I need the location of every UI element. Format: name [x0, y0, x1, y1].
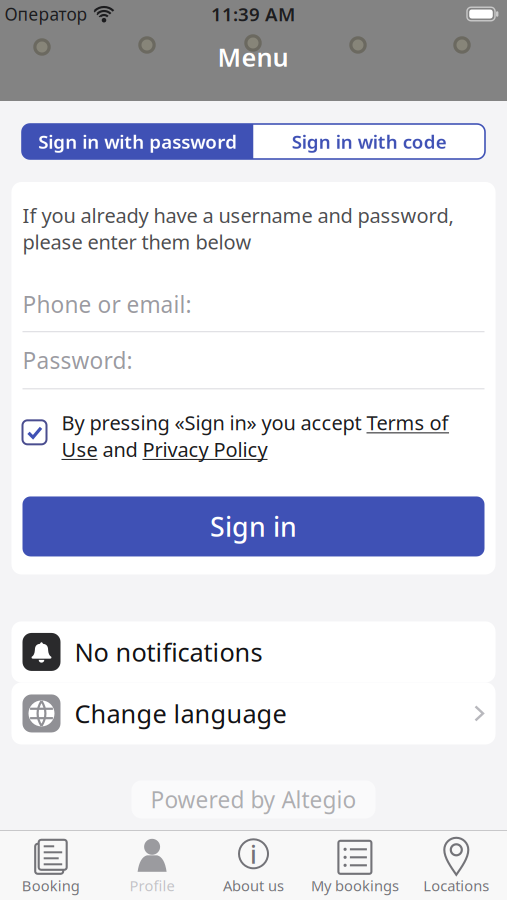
staticText: Booking — [22, 876, 80, 895]
staticText: Change language — [74, 697, 286, 730]
staticText: No notifications — [74, 635, 262, 669]
button[interactable]: Profile — [101, 837, 203, 895]
staticText: Sign in with code — [292, 129, 447, 154]
staticText: Menu — [217, 40, 288, 74]
staticText: Powered by Altegio — [150, 784, 356, 814]
staticText: By pressing «Sign in» you accept Terms o… — [61, 409, 448, 462]
staticText: i — [250, 837, 257, 871]
staticText: 11:39 AM — [211, 2, 295, 26]
button[interactable]: Booking — [0, 837, 101, 895]
button[interactable]: Sign in with code — [253, 124, 485, 159]
staticText: Phone or email: — [22, 289, 191, 319]
staticText: Profile — [130, 876, 175, 895]
button[interactable]: Powered by Altegio — [131, 780, 375, 818]
button[interactable]: Accept terms — [22, 420, 46, 444]
button[interactable]: My bookings — [304, 837, 406, 895]
button[interactable]: No notifications — [11, 621, 495, 682]
button[interactable]: Sign in with password — [22, 124, 253, 159]
staticText: Оператор — [4, 2, 87, 25]
button[interactable]: Locations — [406, 837, 507, 895]
staticText: About us — [223, 876, 284, 895]
staticText: My bookings — [311, 876, 399, 895]
staticText: Locations — [423, 876, 489, 895]
staticText: Sign in — [210, 509, 297, 544]
staticText: Sign in with password — [38, 129, 237, 154]
button[interactable]: Change language — [11, 682, 495, 744]
staticText: If you already have a username and passw… — [22, 202, 453, 255]
button[interactable]: i — [203, 837, 304, 895]
staticText: Password: — [22, 345, 132, 375]
button[interactable]: Sign in — [22, 496, 484, 556]
